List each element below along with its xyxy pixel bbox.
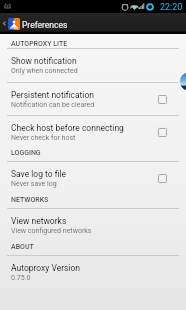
staticText: Never save log [11, 180, 57, 188]
button[interactable]: Save log to file [0, 162, 186, 195]
staticText: Never check for host [11, 134, 76, 142]
button[interactable]: View networks [0, 209, 186, 242]
staticText: Save log to file [11, 169, 67, 179]
other: Save log to file [158, 174, 167, 183]
other: Persistent notification [158, 95, 167, 104]
button[interactable]: Navigate up [0, 13, 186, 34]
staticText: Show notification [11, 56, 77, 66]
staticText: LOGGING [11, 149, 41, 156]
button[interactable]: Show notification [0, 49, 186, 82]
staticText: AUTOPROXY LITE [11, 40, 68, 48]
staticText: Only when connected [11, 67, 78, 75]
staticText: View configured networks [11, 227, 92, 235]
staticText: Notification can be cleared [11, 101, 95, 109]
button[interactable]: Check host before connecting [0, 116, 186, 149]
button[interactable]: Autoproxy Version [0, 256, 186, 289]
other: Check host before connecting [158, 128, 167, 137]
staticText: Preferences [22, 20, 68, 30]
staticText: Check host before connecting [11, 123, 124, 133]
staticText: ABOUT [11, 243, 34, 251]
button[interactable]: Persistent notification [0, 83, 186, 115]
staticText: 0.75.0 [11, 274, 31, 282]
staticText: NETWORKS [11, 196, 49, 204]
staticText: Persistent notification [11, 90, 94, 100]
staticText: 22:20 [160, 2, 183, 13]
staticText: Autoproxy Version [11, 263, 81, 273]
staticText: View networks [11, 216, 67, 226]
